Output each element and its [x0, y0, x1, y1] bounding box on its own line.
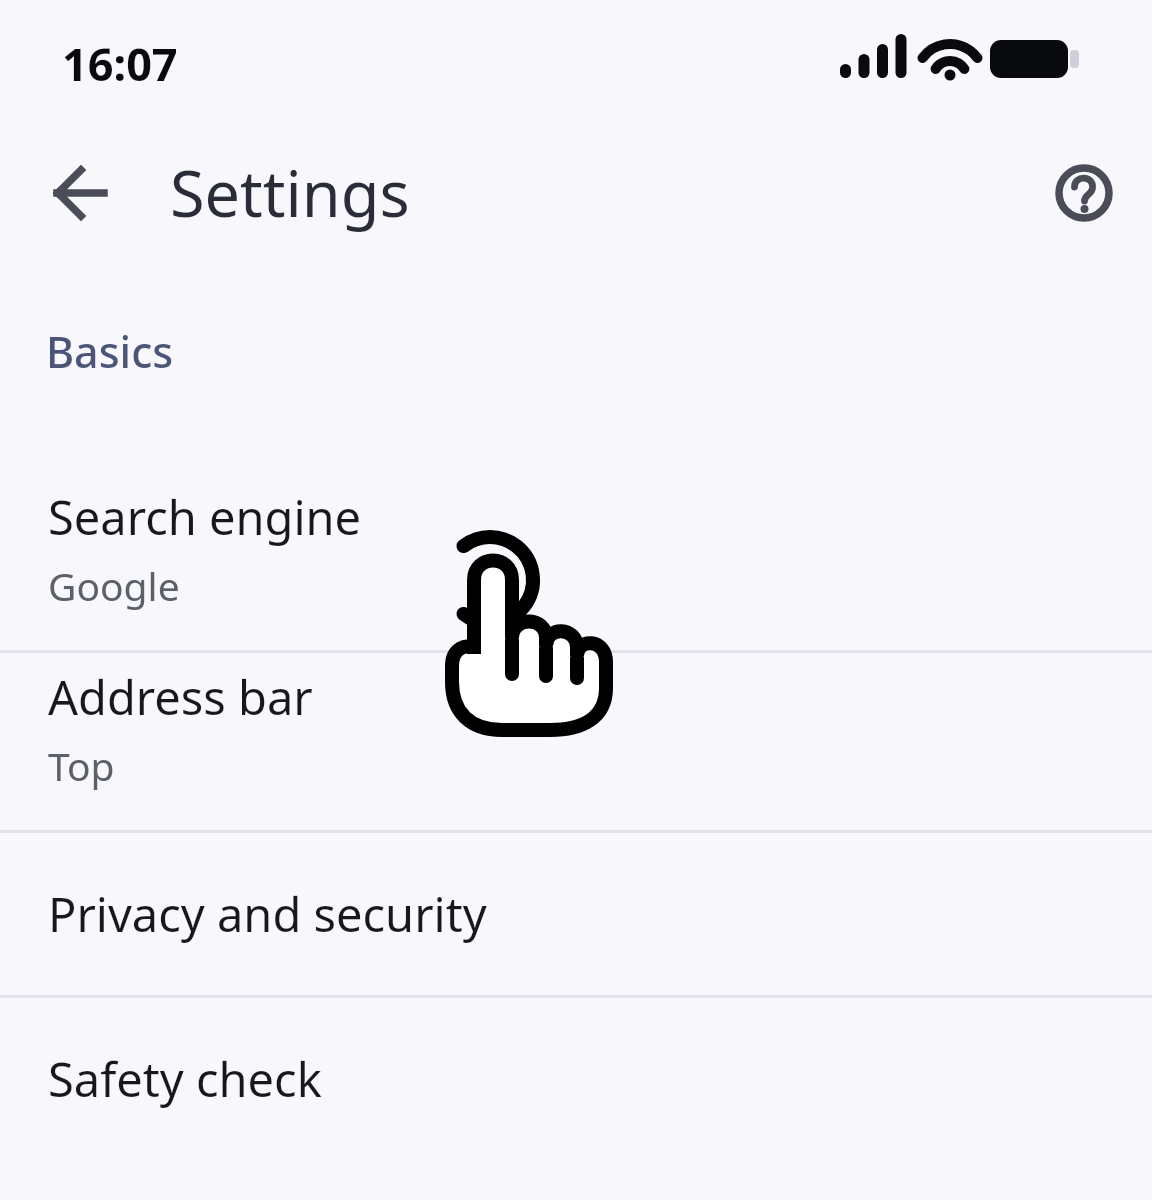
button[interactable]: Back [34, 155, 110, 231]
staticText: Privacy and security [48, 882, 487, 946]
button[interactable]: Search engine [0, 473, 1152, 650]
staticText: Top [48, 739, 115, 792]
staticText: Settings [170, 150, 410, 236]
staticText: Google [48, 559, 180, 612]
staticText: Safety check [48, 1047, 322, 1111]
button[interactable]: Address bar [0, 653, 1152, 830]
staticText: Basics [46, 322, 174, 381]
button[interactable]: Safety check [0, 998, 1152, 1160]
button[interactable]: Privacy and security [0, 833, 1152, 995]
staticText: Address bar [48, 665, 313, 729]
button[interactable]: Help [1046, 155, 1122, 231]
button[interactable]: Settings [170, 150, 410, 236]
staticText: 16:07 [62, 33, 178, 94]
staticText: Search engine [48, 485, 362, 549]
